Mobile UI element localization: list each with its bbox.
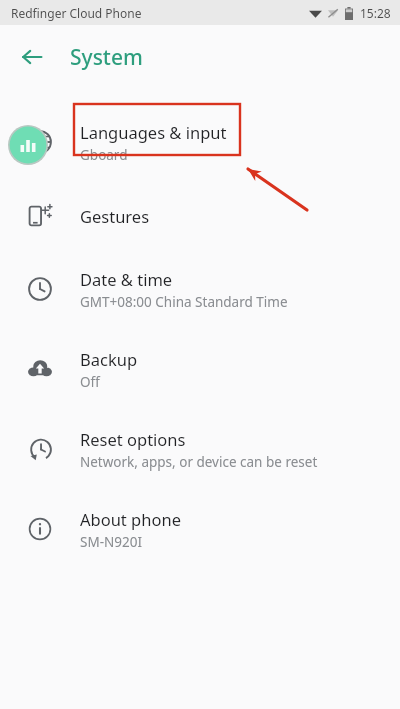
- staticText: Backup: [80, 348, 138, 370]
- button[interactable]: Reset options: [0, 409, 400, 489]
- button[interactable]: About phone: [0, 489, 400, 569]
- staticText: SM-N920I: [80, 533, 143, 551]
- staticText: Gboard: [80, 146, 128, 164]
- staticText: Reset options: [80, 428, 186, 450]
- staticText: System: [70, 43, 143, 72]
- staticText: Network, apps, or device can be reset: [80, 453, 318, 471]
- staticText: Redfinger Cloud Phone: [11, 5, 142, 21]
- button[interactable]: Backup: [0, 329, 400, 409]
- staticText: Date & time: [80, 268, 173, 290]
- staticText: Languages & input: [80, 121, 227, 143]
- button[interactable]: Back: [11, 36, 53, 78]
- staticText: Off: [80, 373, 100, 391]
- staticText: About phone: [80, 508, 181, 530]
- staticText: Gestures: [80, 205, 150, 227]
- button[interactable]: Date & time: [0, 249, 400, 329]
- button[interactable]: Gestures: [0, 182, 400, 249]
- button[interactable]: Floating assistant: [8, 125, 48, 165]
- staticText: 15:28: [360, 5, 391, 21]
- staticText: GMT+08:00 China Standard Time: [80, 293, 288, 311]
- button[interactable]: Languages & input: [0, 102, 400, 182]
